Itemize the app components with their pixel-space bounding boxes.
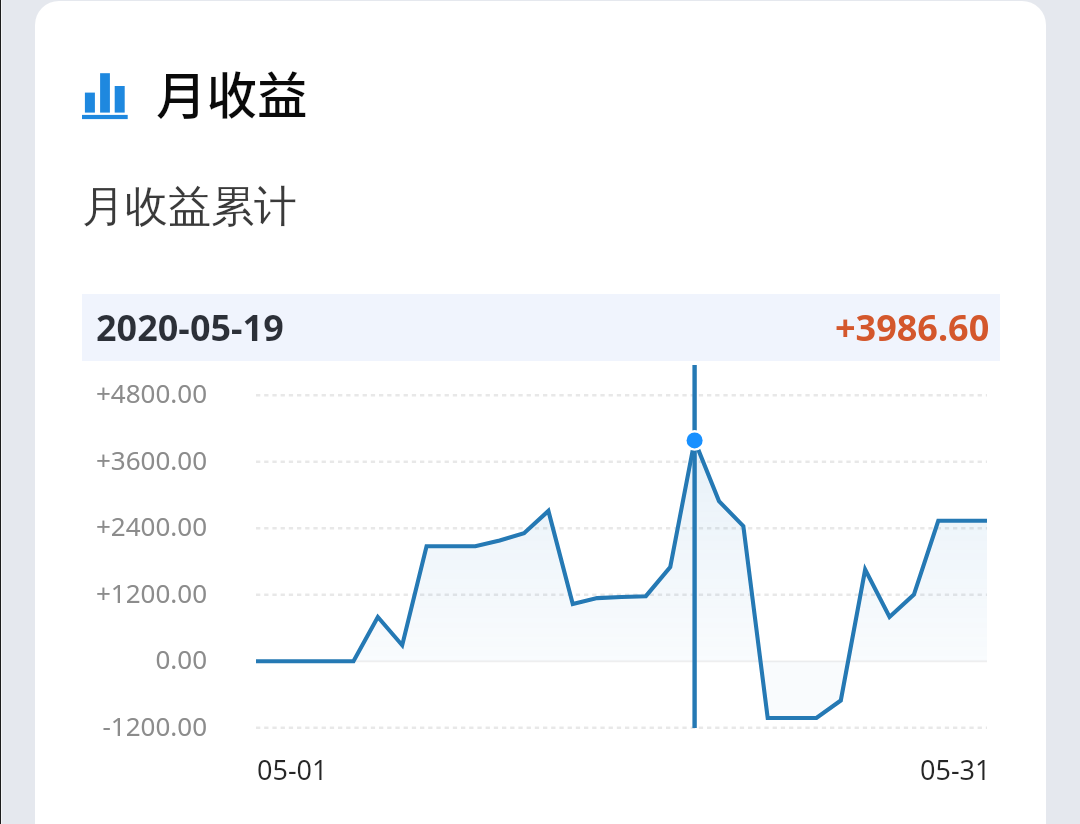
- staticText: 月收益: [156, 55, 308, 125]
- staticText: +4800.00: [35, 375, 207, 410]
- button[interactable]: 2020-05-19: [82, 294, 1000, 361]
- staticText: +3600.00: [35, 442, 207, 477]
- staticText: 月收益累计: [82, 180, 297, 234]
- staticText: 05-01: [257, 751, 328, 788]
- staticText: +3986.60: [835, 303, 990, 352]
- button[interactable]: Monthly earnings chart: [35, 362, 1046, 790]
- button[interactable]: Monthly earnings: [75, 57, 365, 127]
- staticText: -1200.00: [35, 708, 207, 743]
- staticText: +1200.00: [35, 575, 207, 610]
- staticText: 0.00: [35, 641, 207, 676]
- staticText: 2020-05-19: [96, 303, 284, 352]
- staticText: 05-31: [920, 751, 991, 788]
- other: Monthly earnings: [82, 73, 128, 119]
- staticText: +2400.00: [35, 508, 207, 543]
